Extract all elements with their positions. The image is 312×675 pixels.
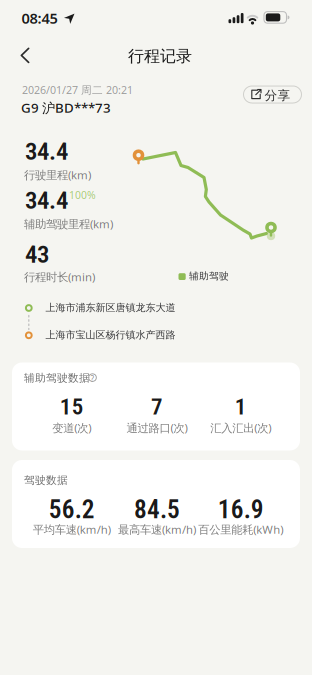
staticText: 100%: [69, 188, 96, 202]
staticText: 34.4: [25, 137, 68, 166]
staticText: 平均车速(km/h): [33, 522, 111, 537]
staticText: 汇入汇出(次): [210, 420, 271, 435]
button[interactable]: Info: [87, 372, 98, 383]
staticText: 上海市浦东新区唐镇龙东大道: [45, 301, 175, 314]
staticText: 15: [60, 393, 84, 420]
staticText: 辅助驾驶数据: [24, 371, 90, 385]
button[interactable]: Back: [8, 38, 42, 72]
staticText: 16.9: [218, 495, 264, 524]
staticText: 行驶里程(km): [24, 167, 91, 182]
button[interactable]: Share: [243, 86, 301, 103]
staticText: G9 沪BD***73: [21, 98, 111, 117]
staticText: ?: [90, 373, 94, 384]
staticText: 1: [235, 393, 247, 420]
staticText: 上海市宝山区杨行镇水产西路: [45, 329, 175, 341]
staticText: 08:45: [21, 8, 57, 28]
staticText: 驾驶数据: [24, 474, 68, 487]
staticText: 84.5: [134, 495, 180, 524]
staticText: 变道(次): [52, 420, 91, 435]
staticText: 行程记录: [128, 46, 192, 66]
staticText: 56.2: [49, 495, 95, 524]
staticText: 34.4: [25, 186, 68, 215]
staticText: 辅助驾驶: [189, 270, 229, 282]
staticText: 7: [151, 393, 163, 420]
staticText: 2026/01/27 周二 20:21: [22, 82, 133, 97]
staticText: 分享: [264, 88, 290, 104]
staticText: 行程时长(min): [24, 269, 95, 284]
staticText: 辅助驾驶里程(km): [24, 216, 113, 231]
staticText: 百公里能耗(kWh): [198, 522, 283, 537]
staticText: 最高车速(km/h): [118, 522, 196, 537]
staticText: 通过路口(次): [126, 420, 187, 435]
staticText: 43: [25, 240, 49, 269]
